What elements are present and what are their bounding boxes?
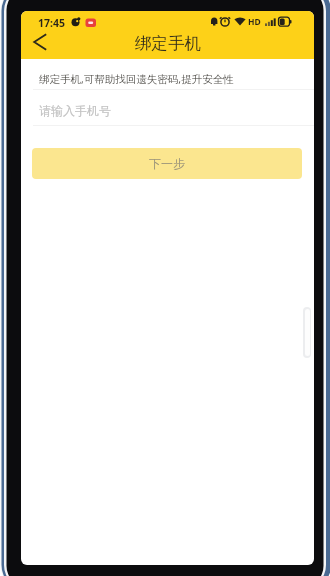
- button[interactable]: [25, 30, 59, 58]
- staticText: 下一步: [149, 156, 185, 171]
- button[interactable]: 请输入手机号: [33, 90, 314, 125]
- staticText: 绑定手机,可帮助找回遗失密码,提升安全性: [39, 72, 234, 86]
- staticText: 请输入手机号: [39, 103, 111, 118]
- staticText: 绑定手机: [135, 33, 201, 54]
- staticText: 17:45: [38, 16, 65, 30]
- staticText: HD: [248, 16, 261, 28]
- button[interactable]: 下一步: [32, 148, 302, 179]
